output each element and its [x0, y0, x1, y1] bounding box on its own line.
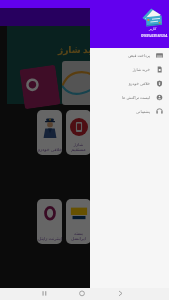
other: لیست تراکنش ها	[155, 93, 164, 102]
staticText: شارژ مستقیم	[66, 141, 91, 152]
staticText: بسته ایرانسل	[66, 230, 91, 241]
button[interactable]: خلافی خودرو	[90, 76, 169, 90]
staticText: پشتیبانی	[136, 109, 150, 114]
button[interactable]: پرداخت قبض	[90, 48, 169, 62]
staticText: خرید شارژ	[132, 67, 150, 72]
button[interactable]: خلافی خودرو	[37, 110, 62, 155]
staticText: کاربر	[149, 27, 157, 31]
other: پرداخت قبض	[155, 51, 164, 60]
other: پشتیبانی	[155, 107, 164, 116]
staticText: خرید شارژ	[58, 43, 104, 55]
staticText: خلافی خودرو	[128, 81, 150, 86]
button[interactable]: لیست تراکنش ها	[90, 90, 169, 104]
other: خلافی خودرو	[155, 79, 164, 88]
other: خرید شارژ	[155, 65, 164, 74]
button[interactable]: اینترنت رایتل	[37, 199, 62, 244]
button[interactable]: خرید شارژ	[90, 62, 169, 76]
button[interactable]: خرید شارژ	[7, 26, 169, 104]
button[interactable]: بسته ایرانسل	[66, 199, 91, 244]
staticText: 09354356534	[141, 33, 168, 39]
button[interactable]: پشتیبانی	[90, 104, 169, 118]
staticText: پرداخت قبض	[128, 53, 150, 58]
button[interactable]: شارژ مستقیم	[66, 110, 91, 155]
staticText: خلافی خودرو	[38, 146, 62, 152]
staticText: لیست تراکنش ها	[122, 95, 150, 100]
staticText: اینترنت رایتل	[38, 235, 62, 241]
